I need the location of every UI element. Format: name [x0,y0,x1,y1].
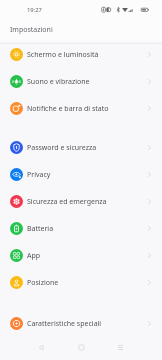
staticText: Posizione [27,278,59,288]
staticText: Privacy [27,170,51,180]
button[interactable]: Batteria [0,215,162,242]
button[interactable]: Home [70,336,92,358]
staticText: Impostazioni [10,25,53,35]
staticText: Caratteristiche speciali [27,319,102,329]
button[interactable]: Caratteristiche speciali [0,310,162,337]
button[interactable]: App [0,242,162,269]
button[interactable]: Posizione [0,269,162,296]
button[interactable]: Schermo e luminosità [0,41,162,68]
staticText: Notifiche e barra di stato [27,104,109,114]
staticText: App [27,251,41,261]
button[interactable]: Back [30,336,52,358]
button[interactable]: Password e sicurezza [0,134,162,161]
staticText: Batteria [27,224,54,234]
staticText: 19:27 [27,6,42,14]
button[interactable]: Suono e vibrazione [0,68,162,95]
staticText: Schermo e luminosità [27,50,99,60]
button[interactable]: Privacy [0,161,162,188]
staticText: Sicurezza ed emergenza [27,197,107,207]
button[interactable]: Notifiche e barra di stato [0,95,162,122]
button[interactable]: Sicurezza ed emergenza [0,188,162,215]
staticText: Password e sicurezza [27,143,97,153]
staticText: Suono e vibrazione [27,77,90,87]
button[interactable]: Recent apps [109,336,131,358]
